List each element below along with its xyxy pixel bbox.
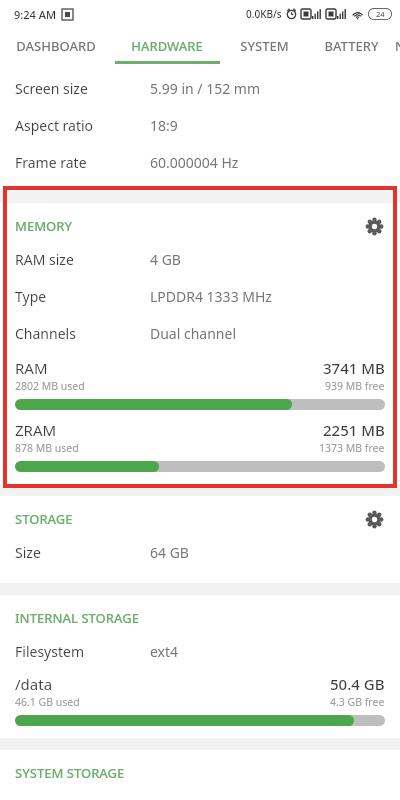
staticText: 4 GB [150, 250, 181, 269]
button[interactable]: RAM [0, 358, 400, 410]
staticText: ZRAM [15, 420, 57, 440]
button[interactable]: Filesystem [0, 633, 400, 670]
button[interactable]: BATTERY [307, 28, 395, 64]
staticText: Filesystem [15, 642, 84, 661]
staticText: RAM [15, 358, 48, 378]
button[interactable]: Frame rate [0, 144, 400, 181]
staticText: LPDDR4 1333 MHz [150, 287, 272, 306]
button[interactable]: MEMORY [0, 211, 400, 241]
staticText: 0.0KB/s [246, 7, 282, 21]
staticText: 24 [376, 9, 385, 19]
staticText: 878 MB used [15, 441, 79, 455]
staticText: 46.1 GB used [15, 695, 80, 709]
staticText: Channels [15, 324, 76, 343]
staticText: 3741 MB [323, 358, 385, 378]
staticText: 2251 MB [323, 420, 385, 440]
staticText: Aspect ratio [15, 116, 94, 135]
button[interactable]: DASHBOARD [0, 28, 112, 64]
button[interactable]: Type [0, 278, 400, 315]
button[interactable]: Channels [0, 315, 400, 352]
button[interactable]: RAM size [0, 241, 400, 278]
staticText: 50.4 GB [330, 674, 385, 694]
button[interactable]: Screen size [0, 70, 400, 107]
staticText: 1373 MB free [319, 441, 385, 455]
staticText: Dual channel [150, 324, 237, 343]
staticText: 5.99 in / 152 mm [150, 79, 261, 98]
staticText: MEMORY [15, 217, 73, 235]
button[interactable]: Aspect ratio [0, 107, 400, 144]
button[interactable]: SYSTEM [222, 28, 307, 64]
staticText: INTERNAL STORAGE [15, 609, 139, 627]
button[interactable]: Settings [362, 214, 386, 238]
button[interactable]: N [395, 28, 400, 64]
button[interactable]: /data [0, 674, 400, 726]
button[interactable]: ZRAM [0, 420, 400, 472]
button[interactable]: SYSTEM STORAGE [0, 758, 400, 788]
staticText: SYSTEM [240, 37, 289, 55]
staticText: 939 MB free [325, 379, 385, 393]
staticText: BATTERY [324, 37, 379, 55]
staticText: 9:24 AM [14, 7, 57, 22]
staticText: 18:9 [150, 116, 178, 135]
staticText: Size [15, 543, 41, 562]
staticText: DASHBOARD [16, 37, 96, 55]
staticText: N [395, 37, 400, 55]
staticText: 2802 MB used [15, 379, 85, 393]
button[interactable]: Settings [362, 507, 386, 531]
staticText: ext4 [150, 642, 179, 661]
button[interactable]: Size [0, 534, 400, 571]
staticText: /data [15, 674, 53, 694]
button[interactable]: HARDWARE [112, 28, 222, 64]
staticText: RAM size [15, 250, 74, 269]
staticText: Type [15, 287, 47, 306]
button[interactable]: STORAGE [0, 504, 400, 534]
staticText: STORAGE [15, 510, 73, 528]
button[interactable]: INTERNAL STORAGE [0, 603, 400, 633]
staticText: Frame rate [15, 153, 87, 172]
staticText: SYSTEM STORAGE [15, 764, 125, 782]
staticText: HARDWARE [131, 37, 203, 55]
staticText: 64 GB [150, 543, 189, 562]
staticText: 4.3 GB free [330, 695, 385, 709]
staticText: 60.000004 Hz [150, 153, 239, 172]
staticText: Screen size [15, 79, 88, 98]
